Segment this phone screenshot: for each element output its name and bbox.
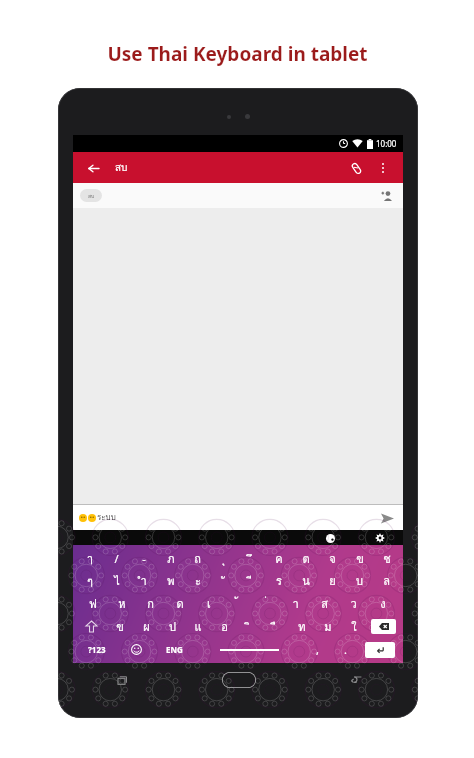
staticText: ป: [169, 618, 176, 635]
button[interactable]: Emoji: [118, 638, 154, 661]
staticText: ข: [116, 618, 124, 635]
staticText: ห: [118, 595, 126, 612]
staticText: จ: [329, 550, 336, 567]
button[interactable]: พ: [157, 569, 184, 592]
staticText: ข: [356, 550, 364, 567]
button[interactable]: ๆ: [76, 569, 103, 592]
staticText: แ: [194, 618, 202, 635]
button[interactable]: ิ: [237, 615, 263, 638]
staticText: สบ: [115, 160, 128, 176]
button[interactable]: ค: [265, 547, 292, 569]
button[interactable]: Theme: [323, 531, 337, 545]
button[interactable]: ผ: [133, 615, 159, 638]
staticText: ะ: [195, 572, 201, 589]
staticText: ย: [329, 572, 336, 589]
button[interactable]: ำ: [130, 569, 157, 592]
staticText: อ: [221, 618, 228, 635]
staticText: ำ: [140, 572, 147, 589]
button[interactable]: Recents: [109, 668, 133, 692]
staticText: ผ: [143, 618, 150, 635]
button[interactable]: ั: [211, 569, 238, 592]
staticText: ENG: [166, 644, 183, 655]
button[interactable]: Backspace: [369, 617, 398, 636]
button[interactable]: ช: [373, 547, 400, 569]
staticText: น: [302, 572, 310, 589]
button[interactable]: Send: [377, 508, 397, 528]
button[interactable]: ่: [252, 592, 281, 615]
button[interactable]: ภ: [157, 547, 184, 569]
button[interactable]: ห: [107, 592, 136, 615]
button[interactable]: ง: [368, 592, 397, 615]
staticText: ฟ: [89, 595, 97, 612]
staticText: สบ: [88, 192, 95, 200]
button[interactable]: บ: [346, 569, 373, 592]
staticText: 10:00: [376, 138, 397, 149]
button[interactable]: จ: [319, 547, 346, 569]
button[interactable]: Enter: [361, 640, 398, 659]
button[interactable]: น: [292, 569, 319, 592]
staticText: ?123: [88, 644, 106, 655]
button[interactable]: ,: [303, 638, 331, 661]
staticText: .: [344, 642, 347, 657]
button[interactable]: ด: [165, 592, 194, 615]
button[interactable]: ๅ: [76, 547, 103, 569]
staticText: บ: [356, 572, 363, 589]
button[interactable]: /: [103, 547, 130, 569]
staticText: ,: [316, 642, 319, 657]
button[interactable]: แ: [185, 615, 211, 638]
button[interactable]: ก: [136, 592, 165, 615]
staticText: ท: [298, 618, 306, 635]
button[interactable]: ท: [289, 615, 315, 638]
staticText: ค: [275, 550, 283, 567]
staticText: ว: [350, 595, 357, 612]
button[interactable]: อ: [211, 615, 237, 638]
button[interactable]: Back: [344, 668, 368, 692]
staticText: ส: [321, 595, 328, 612]
button[interactable]: ฟ: [79, 592, 107, 615]
button[interactable]: ี: [238, 569, 265, 592]
button[interactable]: ใ: [341, 615, 367, 638]
button[interactable]: ้: [223, 592, 252, 615]
button[interactable]: เ: [194, 592, 223, 615]
staticText: ระบบ: [97, 511, 116, 524]
button[interactable]: า: [281, 592, 310, 615]
button[interactable]: -: [130, 547, 157, 569]
button[interactable]: Settings: [373, 531, 387, 545]
staticText: /: [114, 551, 119, 566]
staticText: -: [142, 551, 146, 566]
button[interactable]: สบ: [80, 189, 102, 202]
button[interactable]: ข: [346, 547, 373, 569]
button[interactable]: ข: [106, 615, 133, 638]
button[interactable]: ว: [339, 592, 368, 615]
button[interactable]: Add person: [378, 187, 396, 205]
button[interactable]: ย: [319, 569, 346, 592]
staticText: ด: [176, 595, 184, 612]
button[interactable]: ?123: [76, 638, 118, 661]
button[interactable]: .: [331, 638, 359, 661]
button[interactable]: ม: [315, 615, 341, 638]
button[interactable]: Home: [222, 672, 256, 688]
staticText: ภ: [167, 550, 175, 567]
button[interactable]: ื: [263, 615, 289, 638]
button[interactable]: ถ: [184, 547, 211, 569]
button[interactable]: ไ: [103, 569, 130, 592]
staticText: ถ: [194, 550, 201, 567]
button[interactable]: Attach: [345, 157, 367, 179]
button[interactable]: More options: [373, 158, 393, 178]
button[interactable]: Space: [195, 638, 303, 661]
button[interactable]: ึ: [238, 547, 265, 569]
button[interactable]: ุ: [211, 547, 238, 569]
button[interactable]: ล: [373, 569, 400, 592]
button[interactable]: ะ: [184, 569, 211, 592]
staticText: ใ: [351, 618, 357, 635]
staticText: ง: [380, 595, 386, 612]
button[interactable]: ร: [265, 569, 292, 592]
staticText: ร: [276, 572, 282, 589]
button[interactable]: ENG: [154, 638, 195, 661]
button[interactable]: ป: [159, 615, 185, 638]
staticText: ไ: [114, 572, 120, 589]
button[interactable]: Shift: [76, 615, 106, 638]
button[interactable]: Back: [83, 158, 103, 178]
button[interactable]: ต: [292, 547, 319, 569]
button[interactable]: ส: [310, 592, 339, 615]
